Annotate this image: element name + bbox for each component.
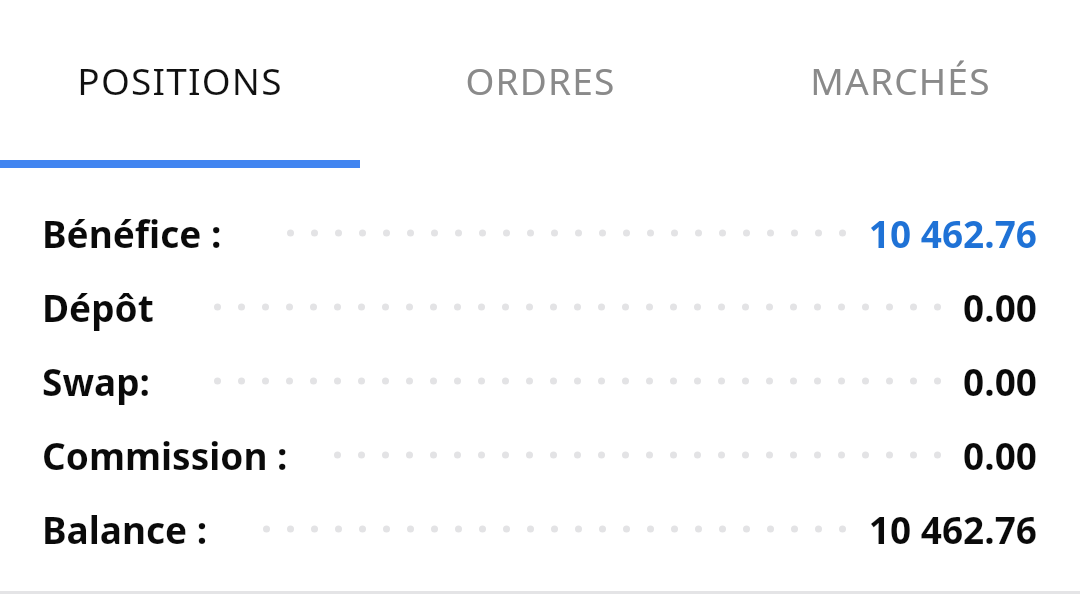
button[interactable]: Bénéfice : xyxy=(0,196,1080,270)
staticText: 0.00 xyxy=(963,282,1037,332)
button[interactable]: POSITIONS xyxy=(0,0,360,160)
staticText: MARCHÉS xyxy=(810,55,991,105)
button[interactable]: ORDRES xyxy=(360,0,720,160)
staticText: Commission : xyxy=(42,430,288,480)
button[interactable]: MARCHÉS xyxy=(720,0,1080,160)
button[interactable]: Commission : xyxy=(0,418,1080,492)
staticText: 0.00 xyxy=(963,356,1037,406)
staticText: Swap: xyxy=(42,356,151,406)
staticText: 10 462.76 xyxy=(868,208,1037,258)
staticText: Bénéfice : xyxy=(42,208,222,258)
button[interactable]: Balance : xyxy=(0,492,1080,566)
button[interactable]: Dépôt xyxy=(0,270,1080,344)
staticText: 10 462.76 xyxy=(868,504,1037,554)
staticText: POSITIONS xyxy=(77,55,283,105)
button[interactable]: Swap: xyxy=(0,344,1080,418)
staticText: ORDRES xyxy=(465,55,616,105)
staticText: Dépôt xyxy=(42,282,154,332)
staticText: 0.00 xyxy=(963,430,1037,480)
staticText: Balance : xyxy=(42,504,208,554)
